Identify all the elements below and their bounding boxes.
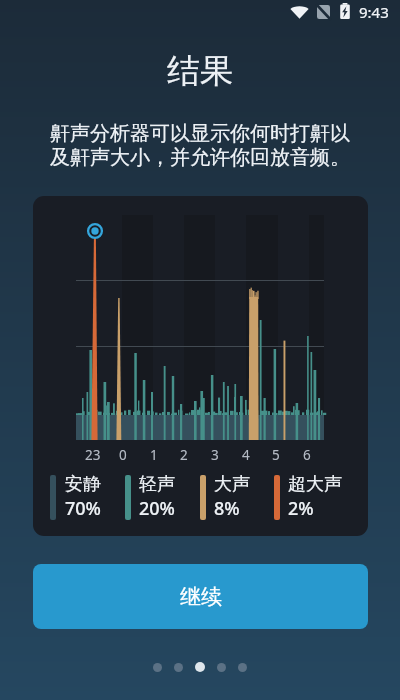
staticText: 9:43	[359, 2, 389, 22]
staticText: 20%	[139, 496, 175, 521]
staticText: 2	[180, 446, 188, 464]
staticText: 6	[303, 446, 311, 464]
staticText: 70%	[65, 496, 101, 521]
staticText: 3	[211, 446, 219, 464]
staticText: 5	[272, 446, 280, 464]
staticText: 2%	[288, 496, 314, 521]
button[interactable]: 继续	[33, 564, 368, 629]
staticText: 0	[119, 446, 127, 464]
staticText: 23	[85, 446, 101, 464]
staticText: 1	[150, 446, 158, 464]
staticText: 4	[242, 446, 250, 464]
staticText: 8%	[214, 496, 240, 521]
staticText: 结果	[0, 50, 400, 92]
staticText: 鼾声分析器可以显示你何时打鼾以及鼾声大小，并允许你回放音频。	[44, 121, 356, 170]
staticText: 安静	[65, 473, 101, 496]
staticText: 轻声	[139, 473, 175, 496]
staticText: 继续	[180, 584, 222, 610]
staticText: 超大声	[288, 473, 342, 496]
staticText: 大声	[214, 473, 250, 496]
